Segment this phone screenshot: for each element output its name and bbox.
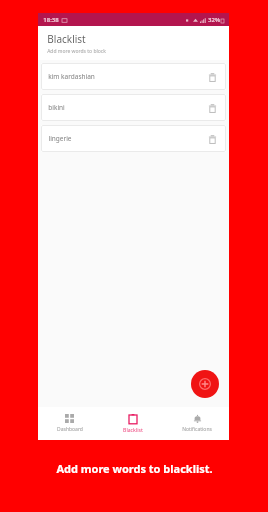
button[interactable]: Notifications xyxy=(165,407,229,440)
staticText: bikini xyxy=(48,103,65,112)
button[interactable]: lingerie xyxy=(41,125,226,152)
button[interactable]: Dashboard xyxy=(38,407,101,440)
staticText: Add more words to block xyxy=(47,48,106,55)
staticText: Dashboard xyxy=(57,426,83,433)
button[interactable]: Delete kim kardashian xyxy=(205,70,219,84)
staticText: 32% xyxy=(208,16,220,24)
staticText: Notifications xyxy=(182,426,212,433)
staticText: Blacklist xyxy=(47,32,86,46)
button[interactable]: bikini xyxy=(41,94,226,121)
staticText: 18:38 xyxy=(43,16,59,24)
button[interactable]: Blacklist xyxy=(101,407,165,440)
staticText: Add more words to blacklist. xyxy=(56,461,213,476)
staticText: kim kardashian xyxy=(48,72,95,81)
button[interactable]: Add word to blacklist xyxy=(191,370,219,398)
staticText: Blacklist xyxy=(123,427,143,434)
button[interactable]: Delete bikini xyxy=(205,101,219,115)
button[interactable]: Delete lingerie xyxy=(205,132,219,146)
staticText: lingerie xyxy=(48,134,72,143)
button[interactable]: kim kardashian xyxy=(41,63,226,90)
